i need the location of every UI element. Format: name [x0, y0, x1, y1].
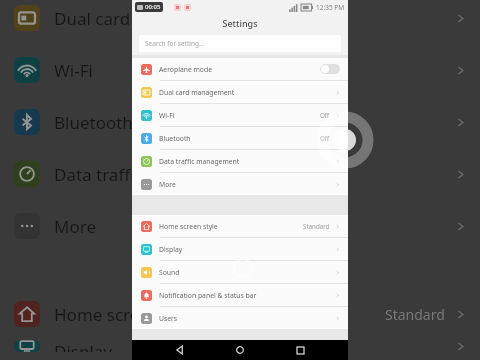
staticText: 00:05 [145, 3, 161, 11]
button[interactable]: Home screen style [132, 215, 348, 237]
staticText: Off [320, 134, 330, 142]
staticText: Wi-Fi [159, 111, 175, 120]
button[interactable]: Display [132, 238, 348, 260]
button[interactable]: Sound [132, 261, 348, 283]
staticText: More [159, 180, 176, 189]
staticText: Standard [303, 222, 330, 230]
button[interactable]: Home [228, 340, 252, 360]
staticText: Sound [159, 268, 180, 277]
staticText: Dual card m [54, 7, 151, 30]
staticText: Data traffic management [159, 157, 240, 166]
button[interactable]: Bluetooth [132, 127, 348, 149]
staticText: Bluetooth [159, 134, 191, 143]
button[interactable]: More [132, 173, 348, 195]
button[interactable]: Recent apps [288, 340, 312, 360]
staticText: Standard [385, 305, 445, 324]
button[interactable]: Users [132, 307, 348, 329]
staticText: Search for setting... [145, 39, 205, 48]
staticText: Settings [222, 17, 258, 29]
staticText: Users [159, 314, 178, 323]
staticText: Data traffic [54, 163, 143, 186]
button[interactable]: Wi-Fi [132, 104, 348, 126]
staticText: Display [159, 245, 183, 254]
staticText: Off [320, 111, 330, 119]
button[interactable]: Aeroplane mode toggle [320, 64, 340, 74]
button[interactable]: Back [168, 340, 192, 360]
button[interactable]: Notification panel & status bar [132, 284, 348, 306]
staticText: Home screen style [159, 222, 218, 231]
staticText: More [54, 215, 96, 238]
staticText: Dual card management [159, 88, 235, 97]
button[interactable]: Aeroplane mode [132, 58, 348, 80]
button[interactable]: Data traffic management [132, 150, 348, 172]
staticText: Display [54, 340, 112, 352]
staticText: Home scree [54, 303, 149, 326]
button[interactable]: Search for setting... [139, 35, 341, 52]
staticText: 12:35 PM [316, 3, 345, 12]
button[interactable]: Dual card management [132, 81, 348, 103]
staticText: Wi-Fi [54, 59, 93, 82]
staticText: Bluetooth [54, 111, 133, 134]
staticText: Aeroplane mode [159, 65, 212, 74]
staticText: Notification panel & status bar [159, 291, 257, 300]
